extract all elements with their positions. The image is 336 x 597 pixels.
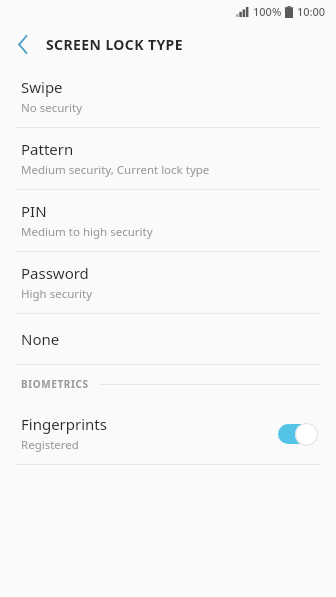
staticText: 10:00: [297, 4, 326, 19]
button[interactable]: Fingerprints toggle, on: [278, 422, 318, 446]
button[interactable]: None: [0, 314, 336, 364]
staticText: Registered: [21, 437, 79, 453]
button[interactable]: Back: [0, 22, 46, 66]
staticText: No security: [21, 100, 83, 116]
staticText: 100%: [253, 4, 282, 19]
staticText: PIN: [21, 201, 47, 221]
button[interactable]: Pattern: [0, 128, 336, 189]
button[interactable]: Fingerprints: [0, 403, 336, 464]
button[interactable]: Swipe: [0, 66, 336, 127]
staticText: Medium security, Current lock type: [21, 162, 210, 178]
staticText: Swipe: [21, 77, 63, 97]
staticText: Pattern: [21, 139, 74, 159]
staticText: High security: [21, 286, 93, 302]
staticText: Password: [21, 263, 89, 283]
button[interactable]: Password: [0, 252, 336, 313]
staticText: None: [21, 329, 60, 349]
staticText: BIOMETRICS: [21, 377, 89, 391]
staticText: Fingerprints: [21, 414, 107, 434]
staticText: Medium to high security: [21, 224, 153, 240]
button[interactable]: PIN: [0, 190, 336, 251]
staticText: SCREEN LOCK TYPE: [46, 35, 183, 54]
